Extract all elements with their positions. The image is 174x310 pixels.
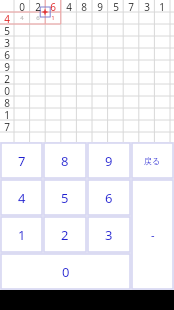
- button[interactable]: 5: [44, 180, 86, 215]
- staticText: 9: [97, 0, 103, 12]
- button[interactable]: 0: [1, 254, 130, 289]
- staticText: 戻る: [144, 156, 161, 166]
- button[interactable]: 戻る: [132, 143, 173, 178]
- staticText: 2: [61, 226, 69, 244]
- button[interactable]: 9: [88, 143, 130, 178]
- staticText: 8: [61, 152, 69, 170]
- staticText: 4: [4, 12, 10, 24]
- staticText: 1: [4, 108, 10, 120]
- staticText: 0: [19, 0, 25, 12]
- staticText: 4: [66, 0, 72, 12]
- button[interactable]: 4: [1, 180, 42, 215]
- button[interactable]: 7: [1, 143, 42, 178]
- staticText: 7: [4, 120, 10, 132]
- staticText: 9: [105, 152, 113, 170]
- staticText: 8: [81, 0, 87, 12]
- staticText: 3: [144, 0, 150, 12]
- staticText: 1: [159, 0, 165, 12]
- staticText: 1: [18, 226, 26, 244]
- staticText: 7: [18, 152, 26, 170]
- staticText: 3: [105, 226, 113, 244]
- staticText: 4: [20, 14, 24, 22]
- staticText: 7: [128, 0, 134, 12]
- staticText: 0: [62, 263, 70, 281]
- staticText: 8: [4, 96, 10, 108]
- staticText: 5: [4, 24, 10, 36]
- button[interactable]: 3: [88, 217, 130, 252]
- staticText: 5: [113, 0, 119, 12]
- staticText: 6: [4, 48, 10, 60]
- staticText: 2: [4, 72, 10, 84]
- button[interactable]: 1: [1, 217, 42, 252]
- button[interactable]: 6: [88, 180, 130, 215]
- staticText: 2: [35, 0, 41, 12]
- button[interactable]: 2: [44, 217, 86, 252]
- staticText: -: [151, 227, 155, 242]
- staticText: 4: [18, 189, 26, 207]
- button[interactable]: -: [132, 180, 173, 289]
- staticText: 6: [50, 0, 56, 12]
- staticText: 3: [4, 36, 10, 48]
- staticText: 5: [61, 189, 69, 207]
- staticText: 0: [4, 84, 10, 96]
- staticText: 9: [4, 60, 10, 72]
- staticText: 1: [51, 14, 55, 22]
- staticText: 6: [105, 189, 113, 207]
- button[interactable]: 8: [44, 143, 86, 178]
- staticText: 6: [36, 14, 40, 22]
